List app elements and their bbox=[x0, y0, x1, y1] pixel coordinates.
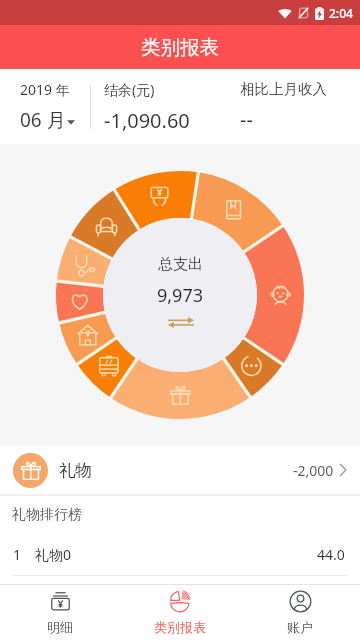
staticText: 44.0 bbox=[317, 545, 345, 564]
staticText: 类别报表 bbox=[154, 619, 206, 635]
button[interactable]: Switch chart bbox=[167, 317, 195, 328]
staticText: 结余(元) bbox=[104, 80, 155, 99]
staticText: 礼物 bbox=[59, 460, 92, 481]
staticText: -1,090.60 bbox=[104, 107, 190, 134]
button[interactable]: 类别报表 bbox=[120, 585, 240, 640]
staticText: 9,973 bbox=[157, 283, 204, 308]
staticText: -- bbox=[240, 106, 253, 133]
staticText: 礼物排行榜 bbox=[12, 506, 82, 524]
staticText: 账户 bbox=[287, 619, 313, 635]
staticText: 总支出 bbox=[158, 255, 203, 274]
button[interactable]: 账户 bbox=[240, 585, 360, 640]
staticText: 类别报表 bbox=[141, 35, 219, 60]
button[interactable]: 2019 年 bbox=[0, 69, 90, 144]
staticText: 相比上月收入 bbox=[240, 80, 327, 98]
staticText: 明细 bbox=[47, 619, 73, 635]
button[interactable]: 明细 bbox=[0, 585, 120, 640]
button[interactable]: 1 bbox=[0, 533, 360, 575]
button[interactable]: 礼物 bbox=[0, 446, 360, 494]
staticText: 1 bbox=[13, 545, 22, 564]
staticText: 2019 年 bbox=[20, 80, 70, 99]
staticText: 礼物0 bbox=[35, 545, 72, 564]
staticText: 2:04 bbox=[329, 5, 353, 21]
staticText: 06 月 bbox=[20, 107, 66, 133]
staticText: -2,000 bbox=[293, 461, 334, 480]
